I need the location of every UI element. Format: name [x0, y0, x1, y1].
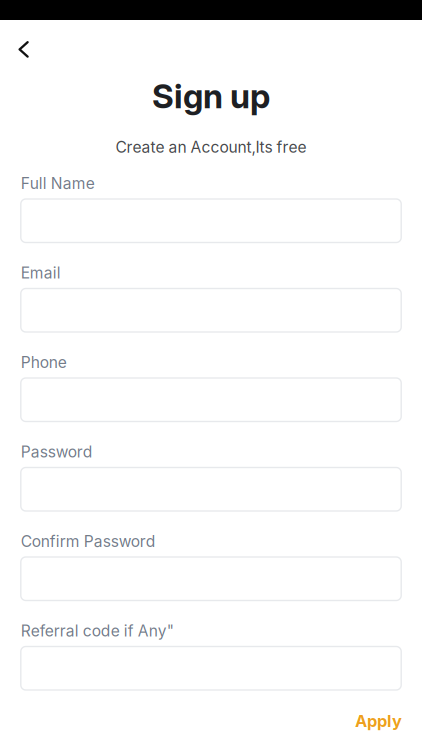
staticText: Confirm Password — [21, 532, 156, 551]
staticText: Referral code if Any" — [21, 621, 174, 640]
staticText: Email — [21, 263, 61, 282]
staticText: Create an Account,Its free — [115, 138, 306, 156]
button[interactable]: Phone — [21, 378, 401, 421]
button[interactable]: Referral code if Any" — [21, 646, 401, 690]
staticText: Sign up — [152, 76, 270, 116]
staticText: Full Name — [21, 174, 95, 193]
staticText: Phone — [21, 353, 67, 372]
button[interactable]: Email — [21, 288, 401, 332]
button[interactable]: Back — [0, 25, 45, 66]
button[interactable]: Apply — [335, 711, 422, 745]
staticText: Password — [21, 442, 93, 461]
staticText: Apply — [355, 711, 402, 731]
